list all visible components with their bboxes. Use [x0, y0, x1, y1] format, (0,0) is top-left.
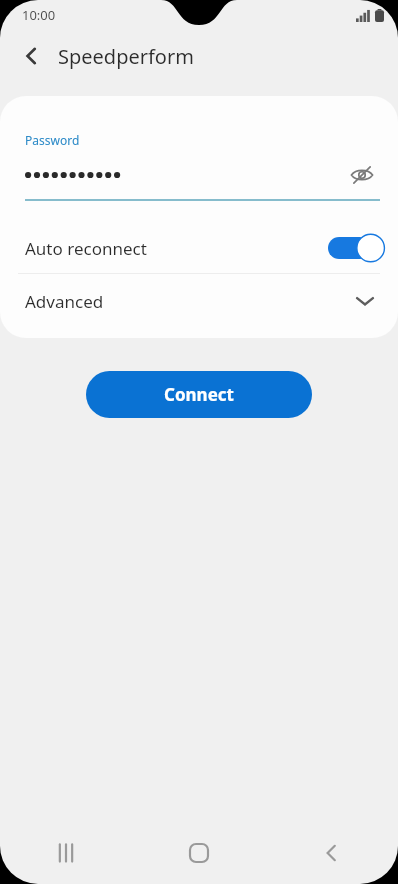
staticText: 10:00 [22, 6, 56, 24]
button[interactable]: Connect [86, 371, 312, 418]
button[interactable]: Password [0, 96, 398, 201]
staticText: Password [25, 132, 80, 148]
button[interactable]: Show password [344, 157, 380, 193]
button[interactable]: Back [265, 822, 398, 884]
button[interactable]: Auto reconnect [0, 223, 398, 273]
button[interactable]: Recent apps [0, 822, 132, 884]
staticText: Speedperform [58, 43, 194, 70]
button[interactable]: Auto reconnect toggle [328, 233, 380, 263]
staticText: Advanced [25, 290, 354, 313]
button[interactable]: Advanced [0, 274, 398, 328]
staticText: Connect [164, 383, 234, 406]
button[interactable]: Back [12, 36, 52, 76]
button[interactable]: Home [132, 822, 265, 884]
staticText: Auto reconnect [25, 237, 328, 260]
